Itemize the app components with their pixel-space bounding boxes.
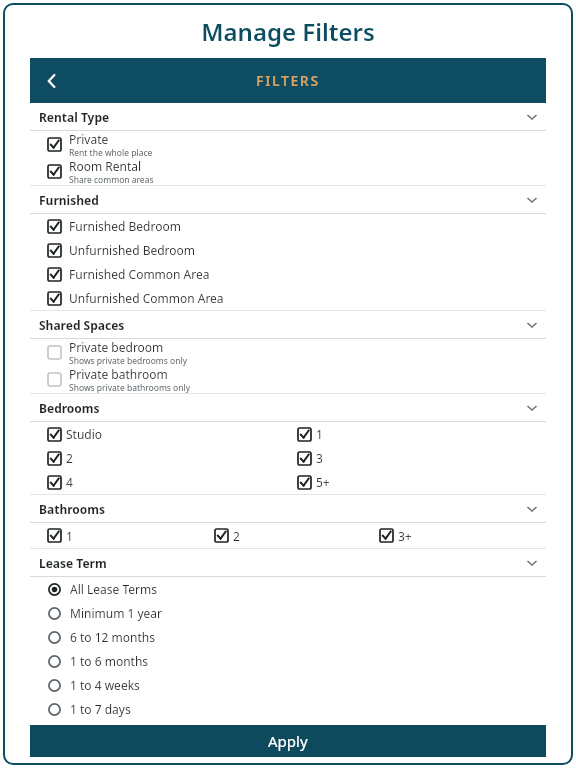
button[interactable]: 1 to 4 weeks bbox=[30, 673, 546, 697]
staticText: 4 bbox=[66, 474, 73, 490]
staticText: Furnished bbox=[39, 192, 99, 208]
button[interactable]: Minimum 1 year bbox=[30, 601, 546, 625]
button[interactable]: 5+ bbox=[298, 470, 546, 494]
staticText: Rent the whole place bbox=[69, 147, 153, 158]
button[interactable]: Bedrooms bbox=[30, 394, 546, 422]
button[interactable]: Furnished Bedroom bbox=[30, 214, 546, 238]
button[interactable]: Flexible bbox=[30, 721, 546, 745]
staticText: 3+ bbox=[398, 528, 412, 544]
button[interactable]: Unfurnished Bedroom bbox=[30, 238, 546, 262]
button[interactable]: Private bbox=[30, 131, 546, 158]
button[interactable]: 1 to 6 months bbox=[30, 649, 546, 673]
button[interactable]: 1 bbox=[48, 523, 215, 548]
button[interactable]: Lease Term bbox=[30, 549, 546, 577]
staticText: 2 bbox=[233, 528, 240, 544]
button[interactable]: 4 bbox=[48, 470, 298, 494]
button[interactable]: 3 bbox=[298, 446, 546, 470]
button[interactable]: Private bathroom bbox=[30, 366, 546, 393]
staticText: Studio bbox=[66, 426, 103, 442]
button[interactable]: All Lease Terms bbox=[30, 577, 546, 601]
staticText: 1 bbox=[66, 528, 73, 544]
button[interactable]: Back bbox=[30, 59, 74, 103]
button[interactable]: 6 to 12 months bbox=[30, 625, 546, 649]
button[interactable]: Bathrooms bbox=[30, 495, 546, 523]
staticText: Minimum 1 year bbox=[70, 605, 163, 621]
button[interactable]: Private bedroom bbox=[30, 339, 546, 366]
button[interactable]: 1 to 7 days bbox=[30, 697, 546, 721]
staticText: Private bbox=[69, 131, 109, 147]
button[interactable]: 3+ bbox=[380, 523, 546, 548]
staticText: Share common areas bbox=[69, 174, 154, 185]
staticText: Shows private bathrooms only bbox=[69, 382, 191, 393]
button[interactable]: Room Rental bbox=[30, 158, 546, 185]
button[interactable]: Apply bbox=[30, 725, 546, 757]
staticText: All Lease Terms bbox=[70, 581, 157, 597]
button[interactable]: 1 bbox=[298, 422, 546, 446]
staticText: Room Rental bbox=[69, 158, 142, 174]
staticText: 6 to 12 months bbox=[70, 629, 155, 645]
staticText: 5+ bbox=[316, 474, 330, 490]
button[interactable]: Furnished bbox=[30, 186, 546, 214]
button[interactable]: Shared Spaces bbox=[30, 311, 546, 339]
staticText: Apply bbox=[268, 731, 308, 751]
staticText: Private bathroom bbox=[69, 366, 168, 382]
staticText: Unfurnished Common Area bbox=[69, 290, 224, 306]
staticText: Private bedroom bbox=[69, 339, 164, 355]
staticText: Rental Type bbox=[39, 109, 110, 125]
staticText: 1 bbox=[316, 426, 323, 442]
staticText: 1 to 7 days bbox=[70, 701, 131, 717]
staticText: 1 to 6 months bbox=[70, 653, 149, 669]
staticText: 3 bbox=[316, 450, 323, 466]
staticText: Bathrooms bbox=[39, 501, 106, 517]
button[interactable]: Unfurnished Common Area bbox=[30, 286, 546, 310]
button[interactable]: 2 bbox=[215, 523, 380, 548]
button[interactable]: Studio bbox=[48, 422, 298, 446]
button[interactable]: Rental Type bbox=[30, 103, 546, 131]
staticText: Shared Spaces bbox=[39, 317, 125, 333]
staticText: 1 to 4 weeks bbox=[70, 677, 140, 693]
staticText: FILTERS bbox=[256, 71, 320, 90]
button[interactable]: 2 bbox=[48, 446, 298, 470]
staticText: 2 bbox=[66, 450, 73, 466]
staticText: Lease Term bbox=[39, 555, 107, 571]
staticText: Manage Filters bbox=[201, 15, 375, 48]
staticText: Shows private bedrooms only bbox=[69, 355, 187, 366]
staticText: Unfurnished Bedroom bbox=[69, 242, 196, 258]
button[interactable]: Furnished Common Area bbox=[30, 262, 546, 286]
staticText: Furnished Common Area bbox=[69, 266, 210, 282]
staticText: Bedrooms bbox=[39, 400, 100, 416]
staticText: Furnished Bedroom bbox=[69, 218, 181, 234]
